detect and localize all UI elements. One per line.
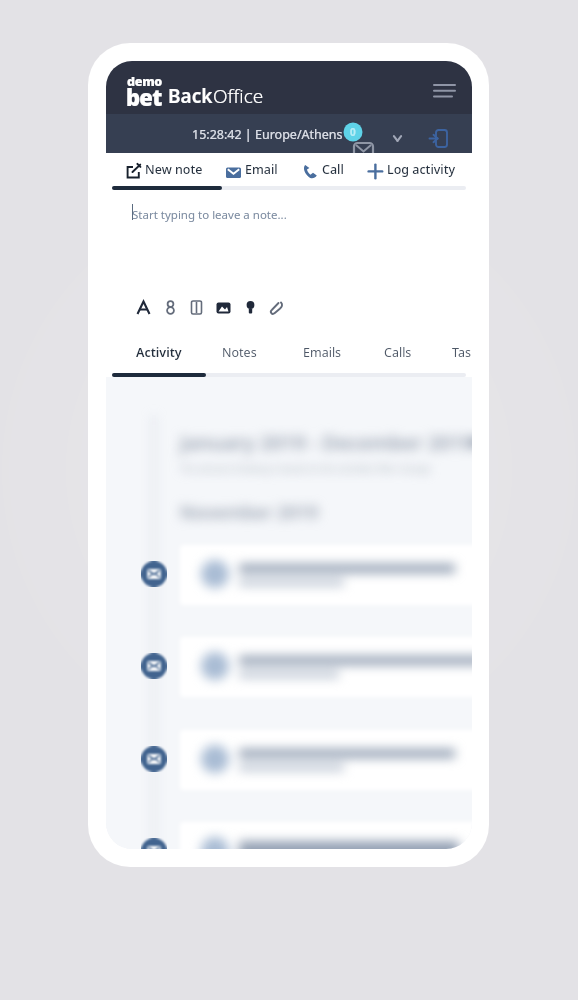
button[interactable]: Format tool [215,299,230,314]
staticText: Call [322,161,344,178]
staticText: 0 [350,125,356,139]
staticText: Emails [303,344,342,361]
button[interactable]: Menu [433,81,455,100]
staticText: 15:28:42 | Europe/Athens [192,126,343,143]
button[interactable]: New note [125,160,203,179]
staticText: Activity [136,344,182,361]
button[interactable]: Notes [222,344,257,364]
staticText: Notes [222,344,257,361]
button[interactable]: Email [225,160,278,179]
staticText: demo [127,73,163,90]
button[interactable]: Account menu [390,132,405,145]
button[interactable]: Format tool [242,299,257,314]
button[interactable]: Tasks [452,344,472,364]
button[interactable]: Format tool [188,299,203,314]
button[interactable]: Format tool [162,299,177,314]
button[interactable]: Format tool [268,299,283,314]
staticText: Office [213,83,264,109]
staticText: Tasks [452,344,472,361]
button[interactable]: Calls [384,344,412,364]
staticText: Back [168,83,213,109]
staticText: January 2019 - December 2019 [180,429,472,456]
button[interactable]: Call [302,160,344,179]
button[interactable]: Format tool [135,299,150,314]
staticText: bet [126,82,162,112]
staticText: Log activity [387,161,456,178]
button[interactable]: Emails [303,344,342,364]
button[interactable]: Activity [136,344,182,364]
staticText: New note [145,161,203,178]
button[interactable]: Log activity [367,160,456,179]
button[interactable]: Messages [342,121,372,151]
staticText: Start typing to leave a note... [132,207,287,223]
staticText: November 2019 [180,500,319,525]
button[interactable]: Log out [426,128,446,148]
staticText: Email [245,161,278,178]
staticText: Calls [384,344,412,361]
